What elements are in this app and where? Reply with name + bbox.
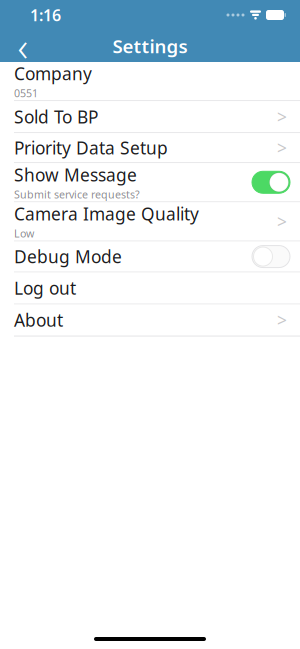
button[interactable]: Debug Mode	[0, 242, 300, 272]
button[interactable]: Show Message	[0, 163, 300, 201]
button[interactable]: Company	[0, 62, 300, 100]
button[interactable]: Camera Image Quality	[0, 202, 300, 241]
staticText: >	[277, 210, 287, 233]
staticText: ‹	[17, 19, 28, 72]
button[interactable]: Sold To BP	[0, 101, 300, 132]
staticText: About	[14, 308, 63, 331]
staticText: >	[277, 136, 287, 159]
button[interactable]: Back	[6, 29, 40, 63]
staticText: Sold To BP	[14, 105, 98, 128]
button[interactable]: Priority Data Setup	[0, 133, 300, 162]
staticText: Priority Data Setup	[14, 136, 168, 159]
staticText: 0551	[14, 86, 38, 100]
staticText: Settings	[112, 34, 187, 58]
button[interactable]: About	[0, 305, 300, 336]
staticText: Camera Image Quality	[14, 202, 199, 225]
staticText: >	[277, 308, 287, 331]
staticText: Log out	[14, 276, 76, 299]
staticText: >	[277, 105, 287, 128]
button[interactable]: Log out	[0, 273, 300, 304]
staticText: Debug Mode	[14, 245, 122, 268]
staticText: 1:16	[30, 4, 61, 26]
staticText: Show Message	[14, 163, 137, 186]
staticText: Company	[14, 62, 92, 85]
staticText: Submit service requests?	[14, 187, 140, 201]
staticText: Low	[14, 226, 34, 241]
